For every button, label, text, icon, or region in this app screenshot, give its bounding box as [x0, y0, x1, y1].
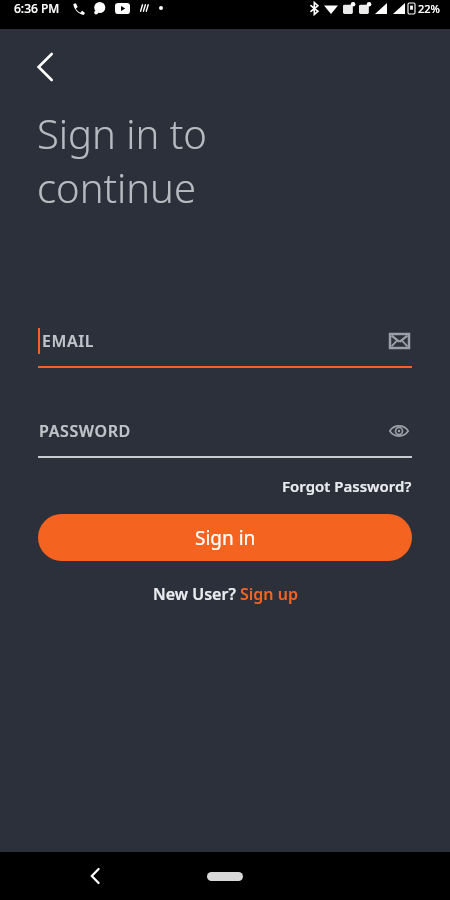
button[interactable]: Email [386, 328, 412, 354]
button[interactable]: Home [207, 872, 243, 881]
staticText: continue [37, 160, 196, 214]
button[interactable]: PASSWORD [38, 414, 412, 458]
staticText: New User? Sign up [153, 583, 298, 605]
staticText: 22% [418, 1, 440, 16]
staticText: 6:36 PM [14, 0, 60, 16]
button[interactable]: Back [24, 46, 66, 88]
staticText: Forgot Password? [282, 476, 412, 496]
staticText: Sign in to [37, 106, 207, 160]
staticText: Sign in [195, 525, 256, 551]
staticText: EMAIL [42, 330, 95, 352]
staticText: PASSWORD [39, 420, 131, 442]
button[interactable]: Back [78, 859, 112, 893]
button[interactable]: Show password [386, 418, 412, 444]
button[interactable]: Sign in [38, 514, 412, 561]
button[interactable]: New User? Sign up [153, 583, 298, 605]
button[interactable]: Forgot Password? [282, 474, 412, 498]
button[interactable]: EMAIL [38, 324, 412, 368]
